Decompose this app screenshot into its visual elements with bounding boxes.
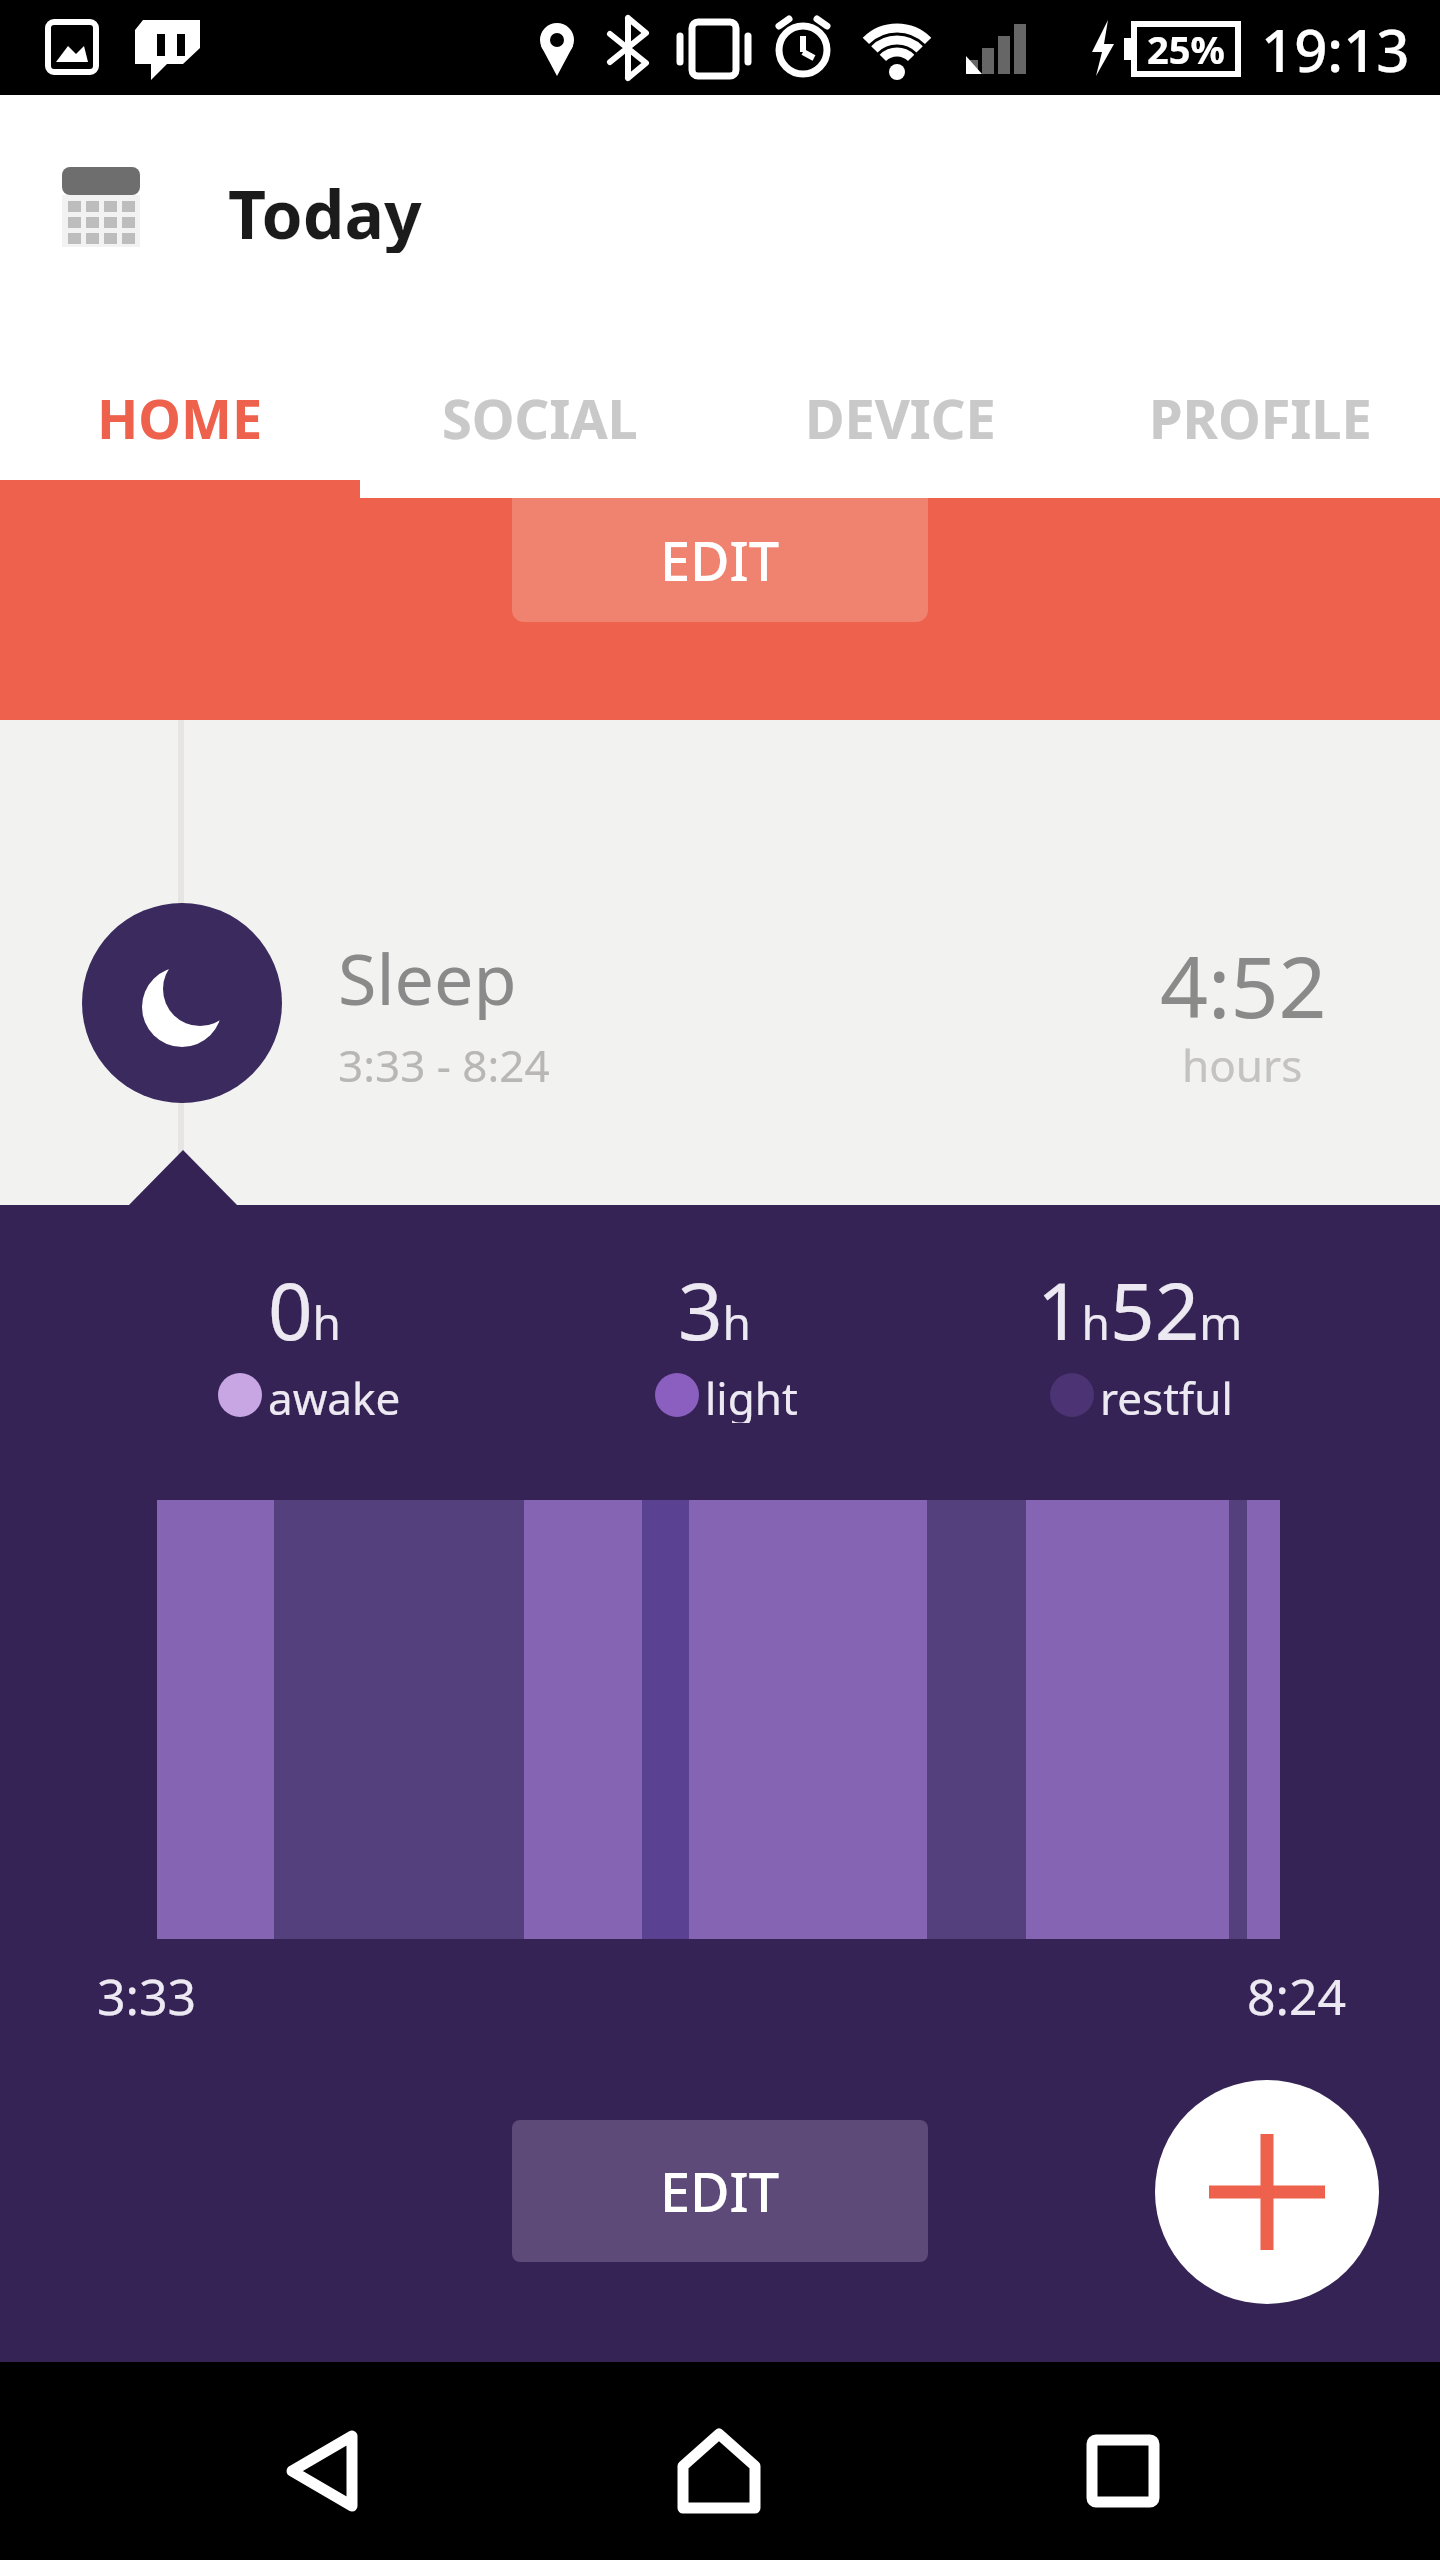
button[interactable]: EDIT <box>512 498 928 622</box>
staticText: light <box>705 1368 798 1423</box>
button[interactable] <box>640 2392 800 2552</box>
button[interactable] <box>1155 2080 1379 2304</box>
staticText: HOME <box>97 381 263 455</box>
staticText: restful <box>1100 1368 1233 1423</box>
staticText: Sleep <box>338 930 517 1020</box>
staticText: SOCIAL <box>442 381 638 455</box>
button[interactable]: DEVICE <box>720 355 1080 480</box>
staticText: DEVICE <box>805 381 996 455</box>
staticText: 3:33 <box>97 1962 197 2022</box>
button[interactable]: SOCIAL <box>360 355 720 480</box>
staticText: 1h52m <box>1037 1257 1243 1363</box>
button[interactable] <box>240 2392 400 2552</box>
staticText: 8:24 <box>1247 1962 1347 2022</box>
staticText: EDIT <box>660 523 780 597</box>
staticText: 25% <box>1147 23 1225 75</box>
button[interactable]: HOME <box>0 355 360 480</box>
button[interactable] <box>1040 2392 1200 2552</box>
button[interactable]: EDIT <box>512 2120 928 2262</box>
staticText: awake <box>268 1368 401 1423</box>
staticText: 3:33 - 8:24 <box>338 1035 550 1090</box>
staticText: 0h <box>268 1257 342 1363</box>
staticText: PROFILE <box>1149 381 1372 455</box>
staticText: 4:52 <box>1160 928 1327 1028</box>
staticText: 3h <box>678 1257 752 1363</box>
staticText: EDIT <box>660 2154 780 2228</box>
button[interactable]: PROFILE <box>1080 355 1440 480</box>
staticText: Today <box>228 168 422 253</box>
staticText: hours <box>1182 1035 1303 1090</box>
staticText: 19:13 <box>1261 10 1410 86</box>
